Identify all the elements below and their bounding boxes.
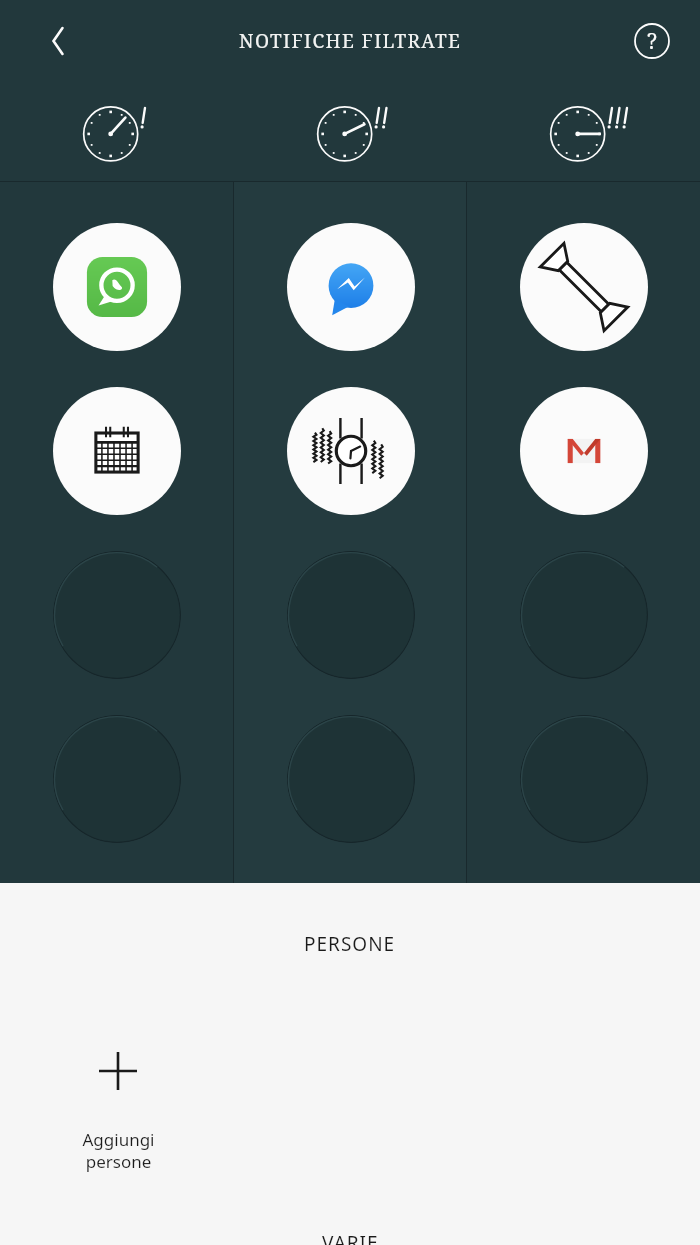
button[interactable]: Messenger — [287, 223, 415, 351]
button[interactable]: Help — [626, 15, 678, 67]
button[interactable]: Empty slot — [287, 551, 415, 679]
staticText: VARIE — [322, 1230, 379, 1245]
button[interactable]: Empty slot — [53, 551, 181, 679]
button[interactable]: Gmail — [520, 387, 648, 515]
button[interactable]: Empty slot — [520, 715, 648, 843]
button[interactable]: Empty slot — [520, 551, 648, 679]
button[interactable]: WhatsApp — [53, 223, 181, 351]
button[interactable]: Calendar — [53, 387, 181, 515]
button[interactable]: Aggiungi persone — [56, 1043, 180, 1173]
button[interactable]: Empty slot — [287, 715, 415, 843]
staticText: ? — [647, 27, 657, 56]
button[interactable]: Phone — [520, 223, 648, 351]
staticText: Aggiungi persone — [82, 1128, 155, 1173]
button[interactable]: Back — [30, 13, 86, 69]
button[interactable]: Watch alarm — [287, 387, 415, 515]
button[interactable]: Priority level 1 — [0, 82, 234, 181]
button[interactable]: Priority level 3 — [467, 82, 700, 181]
button[interactable]: Priority level 2 — [234, 82, 467, 181]
staticText: PERSONE — [304, 931, 396, 957]
button[interactable]: Empty slot — [53, 715, 181, 843]
staticText: NOTIFICHE FILTRATE — [239, 28, 462, 54]
